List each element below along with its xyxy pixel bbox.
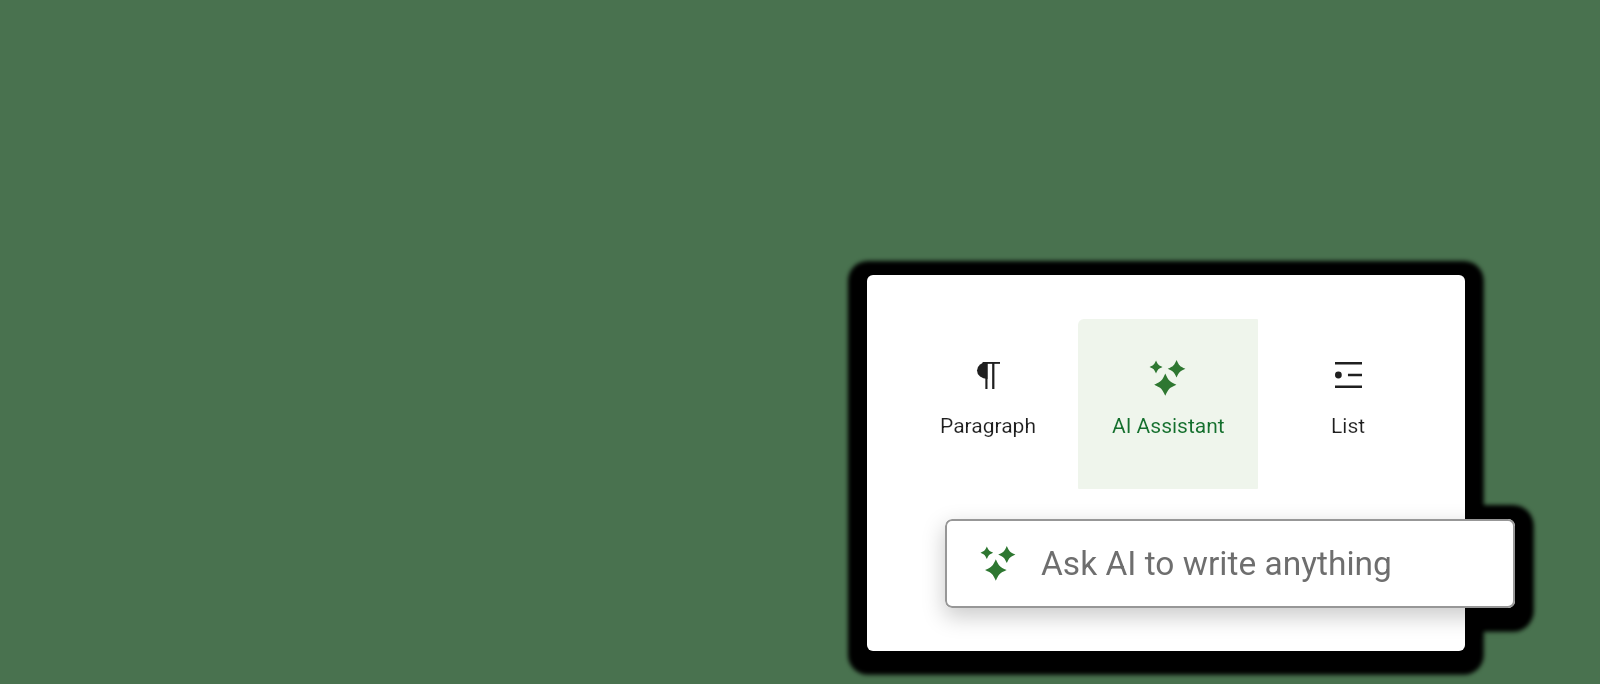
button[interactable]: AI Assistant [945,519,1515,608]
other: AI Assistant [980,545,1016,581]
staticText: AI Assistant [1112,414,1225,439]
other: Paragraph [977,362,1000,389]
button[interactable]: AI Assistant [1078,319,1258,489]
staticText: Paragraph [940,414,1036,439]
staticText: Ask AI to write anything [1041,544,1392,583]
other: AI Assistant [1149,359,1186,396]
staticText: List [1331,414,1366,439]
button[interactable]: List [1258,319,1438,489]
button[interactable]: Paragraph [898,319,1078,489]
other: List [1335,362,1362,388]
